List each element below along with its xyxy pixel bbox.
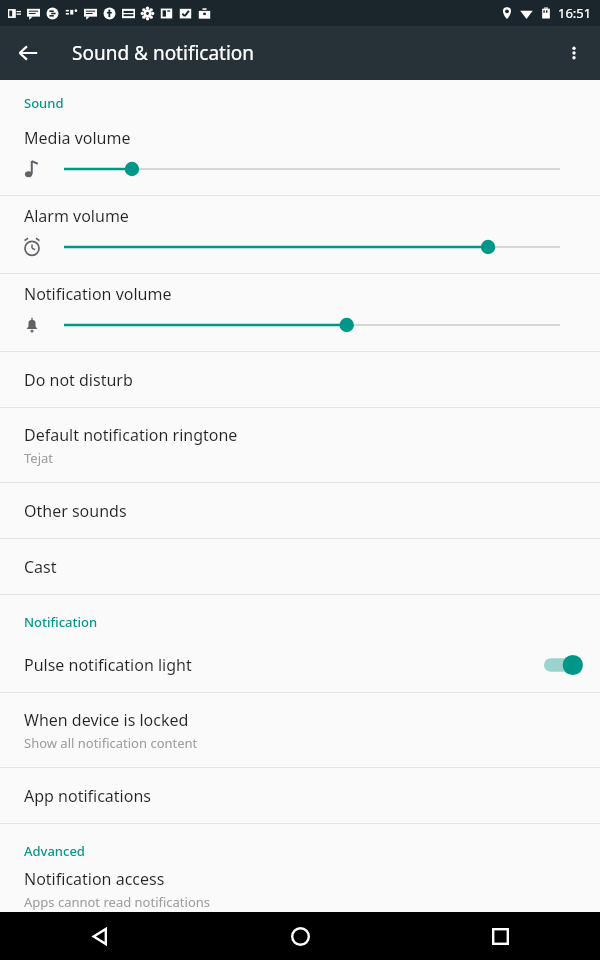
staticText: Do not disturb xyxy=(24,369,133,391)
staticText: Cast xyxy=(24,556,57,578)
button[interactable]: Alarm volume xyxy=(0,196,600,273)
button[interactable]: Default notification ringtone xyxy=(0,408,600,482)
button[interactable]: Home xyxy=(200,912,400,960)
staticText: App notifications xyxy=(24,785,151,807)
button[interactable]: When device is locked xyxy=(0,693,600,767)
staticText: Sound & notification xyxy=(72,40,255,66)
button[interactable]: Recents xyxy=(400,912,600,960)
button[interactable]: Other sounds xyxy=(0,483,600,538)
button[interactable]: Media volume xyxy=(0,118,600,195)
button[interactable]: Pulse notification light xyxy=(0,637,600,692)
staticText: Pulse notification light xyxy=(24,654,192,676)
staticText: 16:51 xyxy=(558,4,592,22)
staticText: Media volume xyxy=(24,127,131,149)
button[interactable]: Back xyxy=(8,33,48,73)
button[interactable]: Notification volume xyxy=(0,274,600,351)
staticText: Other sounds xyxy=(24,500,127,522)
button[interactable]: Notification access xyxy=(0,866,600,912)
staticText: Advanced xyxy=(24,842,85,860)
staticText: Notification xyxy=(24,613,98,631)
staticText: Alarm volume xyxy=(24,205,129,227)
staticText: Sound xyxy=(24,94,64,112)
staticText: Show all notification content xyxy=(24,734,198,752)
button[interactable]: App notifications xyxy=(0,768,600,823)
staticText: Apps cannot read notifications xyxy=(24,893,211,911)
button[interactable]: Cast xyxy=(0,539,600,594)
button[interactable]: Back xyxy=(0,912,200,960)
staticText: Default notification ringtone xyxy=(24,424,238,446)
staticText: Notification volume xyxy=(24,283,172,305)
staticText: Tejat xyxy=(24,449,53,467)
staticText: When device is locked xyxy=(24,709,189,731)
button[interactable]: Do not disturb xyxy=(0,352,600,407)
staticText: Notification access xyxy=(24,868,165,890)
button[interactable]: More options xyxy=(554,33,594,73)
